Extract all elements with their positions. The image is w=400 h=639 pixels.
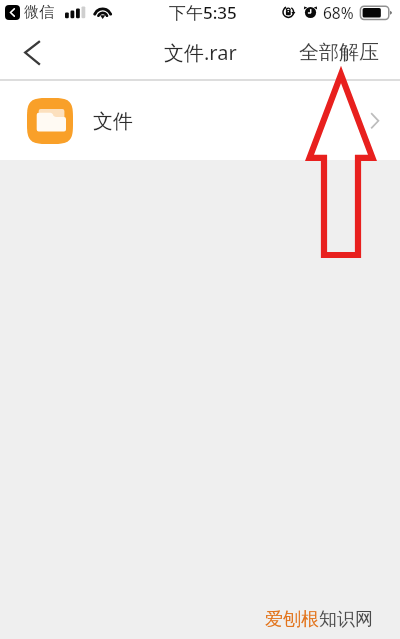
staticText: 下午5:35 — [169, 1, 237, 24]
button[interactable]: Back — [0, 25, 52, 81]
button[interactable]: 文件 — [0, 81, 400, 160]
staticText: 68% — [323, 2, 354, 23]
staticText: 爱刨根 — [265, 608, 319, 631]
staticText: 知识网 — [319, 608, 373, 631]
button[interactable]: 全部解压 — [299, 25, 379, 81]
staticText: 文件 — [93, 109, 133, 134]
staticText: 微信 — [24, 3, 54, 22]
staticText: 全部解压 — [299, 40, 379, 65]
staticText: 文件.rar — [164, 39, 237, 66]
